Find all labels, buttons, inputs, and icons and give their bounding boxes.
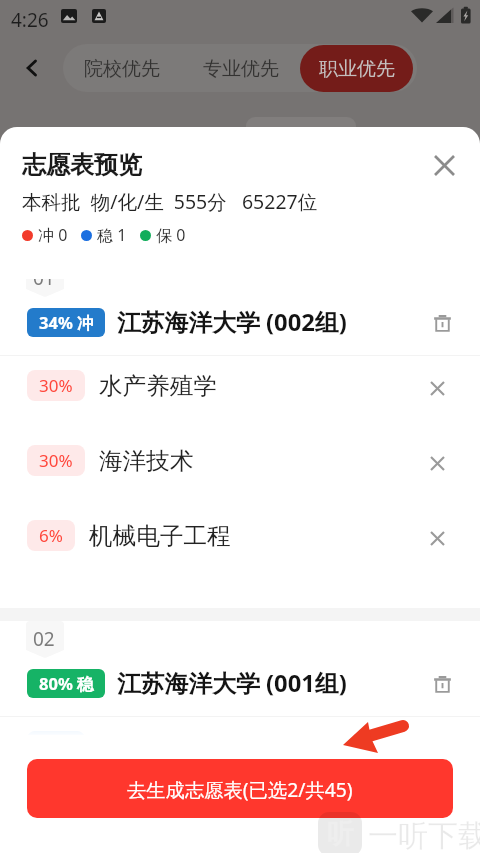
- button[interactable]: 80% 稳: [0, 651, 480, 716]
- staticText: 江苏海洋大学 (002组): [117, 306, 347, 339]
- button[interactable]: 30%: [0, 423, 480, 498]
- button[interactable]: 6%: [0, 498, 480, 573]
- staticText: 机械电子工程: [89, 521, 231, 551]
- staticText: 院校优先: [84, 57, 160, 81]
- staticText: 水产养殖学: [99, 371, 217, 401]
- staticText: 30%: [39, 449, 73, 472]
- button[interactable]: Delete group: [420, 662, 464, 706]
- staticText: 80% 稳: [39, 672, 94, 695]
- staticText: 专业优先: [203, 57, 279, 81]
- button[interactable]: 30%: [0, 348, 480, 423]
- button[interactable]: 去生成志愿表(已选2/共45): [27, 759, 453, 818]
- staticText: 6%: [39, 524, 63, 547]
- button[interactable]: 职业优先: [300, 45, 413, 92]
- button[interactable]: 45%: [0, 709, 480, 735]
- staticText: 本科批 物/化/生 555分 65227位: [22, 188, 318, 215]
- staticText: 保 0: [156, 224, 186, 246]
- staticText: 去生成志愿表(已选2/共45): [127, 776, 353, 802]
- button[interactable]: 院校优先: [63, 45, 181, 92]
- staticText: 稳 1: [97, 224, 127, 246]
- staticText: 02: [33, 626, 55, 652]
- staticText: 30%: [39, 374, 73, 397]
- staticText: 江苏海洋大学 (001组): [117, 667, 347, 700]
- button[interactable]: Back: [15, 51, 49, 85]
- button[interactable]: Remove major: [415, 364, 459, 408]
- staticText: 海洋技术: [99, 446, 194, 476]
- button[interactable]: 专业优先: [181, 45, 300, 92]
- staticText: 一听下载: [368, 817, 480, 853]
- button[interactable]: Remove major: [415, 439, 459, 483]
- button[interactable]: Remove major: [415, 514, 459, 558]
- staticText: 听: [327, 817, 354, 851]
- staticText: 冲 0: [38, 224, 68, 246]
- staticText: 34% 冲: [39, 311, 94, 334]
- button[interactable]: Close: [423, 144, 465, 186]
- staticText: 4:26: [11, 7, 49, 33]
- button[interactable]: 34% 冲: [0, 290, 480, 355]
- button[interactable]: Delete group: [420, 301, 464, 345]
- staticText: 志愿表预览: [22, 150, 142, 180]
- staticText: 职业优先: [319, 57, 395, 81]
- staticText: 01: [33, 279, 55, 291]
